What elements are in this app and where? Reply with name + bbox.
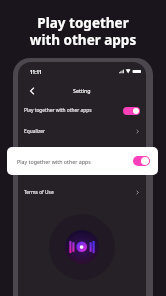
button[interactable]: Play together with other apps bbox=[18, 100, 146, 121]
button[interactable]: Equalizer bbox=[18, 121, 146, 142]
button[interactable]: Terms of Use bbox=[18, 182, 146, 203]
staticText: Play together with other apps bbox=[0, 14, 166, 49]
button[interactable]: Play together with other apps bbox=[7, 147, 158, 175]
staticText: Play together with other apps bbox=[24, 107, 92, 114]
button[interactable]: Toggle bbox=[133, 156, 150, 166]
staticText: Terms of Use bbox=[24, 189, 54, 196]
button[interactable]: Back bbox=[25, 84, 38, 97]
staticText: Equalizer bbox=[24, 128, 45, 135]
staticText: Play together with other apps bbox=[17, 158, 91, 165]
staticText: 11:11 bbox=[30, 69, 42, 75]
staticText: Setting bbox=[73, 87, 91, 94]
button[interactable]: Toggle bbox=[123, 107, 140, 115]
